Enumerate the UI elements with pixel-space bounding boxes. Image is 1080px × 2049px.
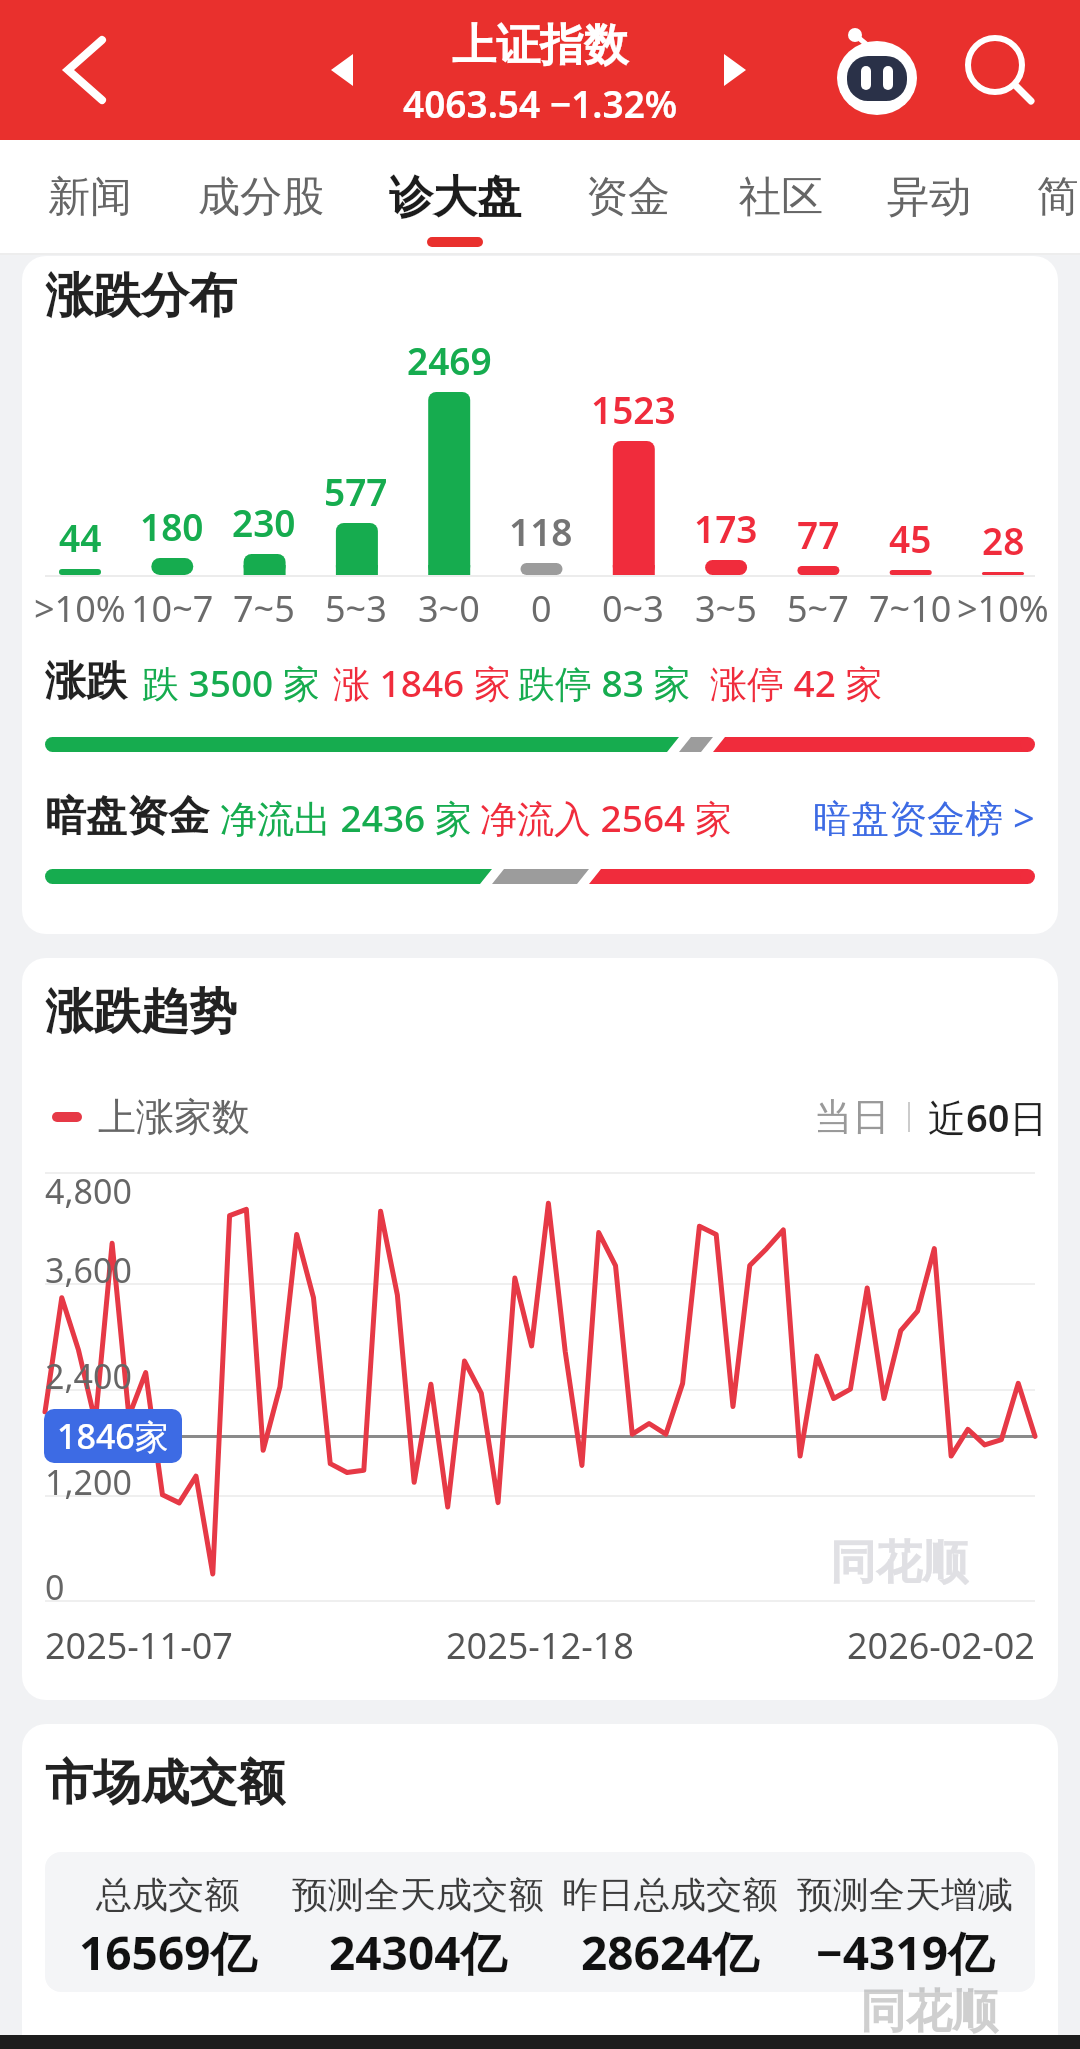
staticText: 预测全天成交额 [292,1872,544,1917]
staticText: 诊大盘 [389,170,521,225]
staticText: 0 [531,584,552,633]
staticText: 1846家 [57,1413,169,1459]
staticText: 净流入 2564 家 [480,792,732,843]
staticText: 上涨家数 [98,1093,250,1141]
button[interactable]: 当日 [790,1077,890,1157]
staticText: 跌 3500 家 [142,657,320,708]
staticText: 44 [59,512,102,562]
button[interactable]: 新闻 [45,157,135,237]
staticText: 预测全天增减 [797,1872,1013,1917]
staticText: 5~7 [787,584,849,633]
staticText: 同花顺 [830,1534,968,1592]
staticText: 45 [889,513,932,563]
staticText: 0~3 [602,584,664,633]
staticText: 2026-02-02 [847,1621,1035,1670]
staticText: 77 [797,509,840,559]
staticText: 2,400 [45,1353,132,1399]
button[interactable]: 诊大盘 [380,157,530,237]
button[interactable]: 近60日 [928,1077,1048,1157]
staticText: 28624亿 [581,1921,759,1984]
staticText: 2025-11-07 [45,1621,233,1670]
staticText: 1,200 [45,1459,132,1505]
staticText: 简 [1037,171,1079,224]
staticText: 2469 [407,335,492,385]
staticText: 4063.54 −1.32% [403,78,678,128]
staticText: 3,600 [45,1247,132,1293]
staticText: 涨跌分布 [45,266,237,326]
button[interactable] [325,50,365,90]
staticText: 成分股 [198,171,324,224]
button[interactable]: 社区 [736,157,826,237]
staticText: −4319亿 [816,1921,994,1984]
staticText: 10~7 [131,584,214,633]
button[interactable]: 暗盘资金榜 > [780,777,1035,857]
staticText: 7~10 [869,584,952,633]
button[interactable]: 简 [1037,157,1080,237]
staticText: 总成交额 [96,1872,240,1917]
staticText: 异动 [887,171,971,224]
staticText: >10% [34,584,126,633]
button[interactable]: 资金 [583,157,673,237]
staticText: 涨停 42 家 [710,657,883,708]
staticText: 173 [694,503,758,553]
staticText: 市场成交额 [45,1753,285,1813]
staticText: 16569亿 [79,1921,257,1984]
staticText: 社区 [739,171,823,224]
staticText: 28 [982,515,1025,565]
staticText: 上证指数 [452,18,628,73]
staticText: 净流出 2436 家 [220,792,472,843]
staticText: 暗盘资金榜 > [813,791,1035,843]
staticText: 涨 1846 家 [333,657,511,708]
staticText: 3~5 [695,584,757,633]
staticText: 3~0 [418,584,480,633]
staticText: 24304亿 [329,1921,507,1984]
staticText: 4,800 [45,1168,132,1214]
staticText: 暗盘资金 [45,791,209,843]
button[interactable]: 异动 [884,157,974,237]
button[interactable] [820,15,930,125]
staticText: 7~5 [233,584,295,633]
staticText: 0 [45,1564,65,1610]
button[interactable]: 成分股 [193,157,328,237]
staticText: 2025-12-18 [446,1621,634,1670]
staticText: 180 [140,501,204,551]
staticText: 230 [232,497,296,547]
staticText: 577 [324,466,388,516]
staticText: 昨日总成交额 [562,1872,778,1917]
staticText: 同花顺 [860,1983,998,2041]
staticText: 118 [509,506,573,556]
button[interactable] [955,25,1045,115]
staticText: 跌停 83 家 [518,657,691,708]
staticText: 5~3 [325,584,387,633]
staticText: 资金 [586,171,670,224]
staticText: >10% [957,584,1049,633]
staticText: 当日 [814,1093,890,1141]
staticText: 近60日 [928,1091,1048,1143]
staticText: 新闻 [48,171,132,224]
staticText: 1523 [591,384,676,434]
staticText: 涨跌 [45,656,127,708]
staticText: 涨跌趋势 [45,982,237,1042]
button[interactable] [50,30,120,110]
button[interactable] [712,50,752,90]
